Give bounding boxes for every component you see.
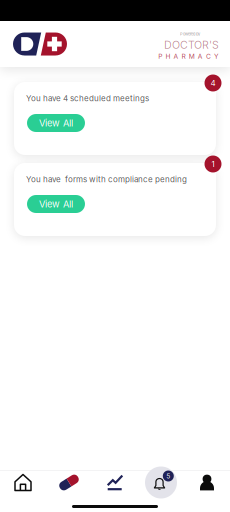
- button[interactable]: Home: [0, 467, 46, 498]
- staticText: View All: [39, 198, 73, 210]
- staticText: You have forms with compliance pending: [26, 174, 187, 184]
- staticText: View All: [39, 117, 73, 129]
- staticText: 5: [166, 472, 170, 480]
- staticText: DOCTOR'S: [164, 38, 219, 51]
- staticText: Powered by: [180, 32, 200, 36]
- button[interactable]: Notifications: [138, 467, 184, 498]
- button[interactable]: Medications: [46, 467, 92, 498]
- button[interactable]: View All: [27, 114, 85, 132]
- staticText: 1: [211, 159, 214, 169]
- button[interactable]: View All: [27, 195, 85, 213]
- staticText: You have 4 scheduled meetings: [26, 93, 149, 103]
- button[interactable]: Profile: [184, 467, 230, 498]
- button[interactable]: Reports: [92, 467, 138, 498]
- staticText: 4: [210, 78, 215, 88]
- staticText: P H A R M A C Y: [158, 52, 219, 60]
